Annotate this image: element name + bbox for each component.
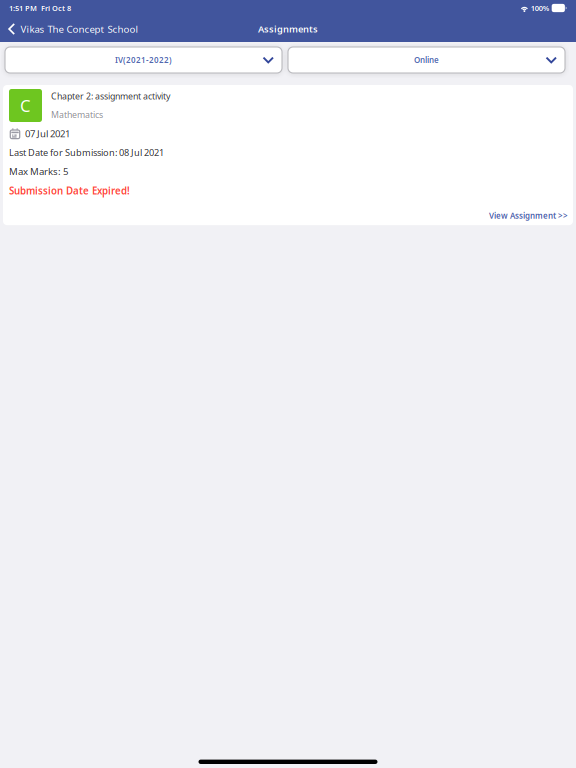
button[interactable]: Vikas The Concept School xyxy=(0,16,144,42)
staticText: 07 Jul 2021 xyxy=(25,127,70,140)
staticText: IV(2021-2022) xyxy=(115,55,172,65)
staticText: Chapter 2: assignment activity xyxy=(51,90,170,102)
staticText: 1:51 PM xyxy=(9,3,37,13)
staticText: Vikas The Concept School xyxy=(20,22,138,36)
staticText: Online xyxy=(414,55,439,65)
staticText: Max Marks: 5 xyxy=(9,165,68,178)
button[interactable]: C xyxy=(0,85,576,225)
staticText: Fri Oct 8 xyxy=(37,3,71,13)
staticText: Last Date for Submission: 08 Jul 2021 xyxy=(9,146,164,159)
staticText: C xyxy=(20,94,31,117)
staticText: View Assignment >> xyxy=(489,210,568,221)
button[interactable]: Online xyxy=(288,47,565,73)
staticText: Mathematics xyxy=(51,108,103,120)
staticText: Submission Date Expired! xyxy=(9,184,130,197)
button[interactable]: IV(2021-2022) xyxy=(5,47,282,73)
staticText: 100% xyxy=(529,3,552,13)
button[interactable]: View Assignment >> xyxy=(489,210,568,221)
staticText: Assignments xyxy=(258,23,318,35)
